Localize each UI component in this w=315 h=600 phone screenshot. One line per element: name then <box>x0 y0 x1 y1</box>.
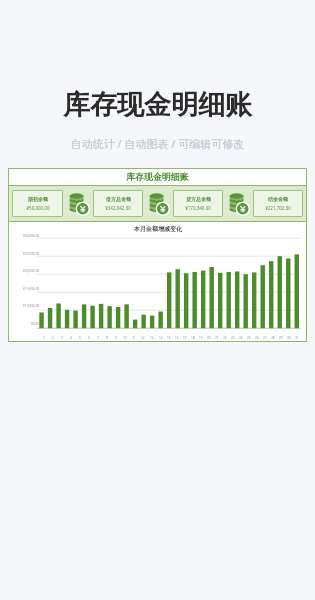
staticText: 9 <box>115 336 117 340</box>
staticText: 14 <box>159 336 163 340</box>
staticText: 28 <box>271 336 275 340</box>
staticText: 23 <box>231 336 235 340</box>
other: Coins <box>66 192 90 216</box>
staticText: 31 <box>295 336 299 340</box>
staticText: 13 <box>150 336 154 340</box>
staticText: 贷方总金额 <box>186 196 211 202</box>
button[interactable]: 期初余额 <box>12 190 63 217</box>
staticText: 27 <box>263 336 267 340</box>
staticText: 2 <box>52 336 54 340</box>
staticText: 22 <box>223 336 227 340</box>
staticText: 29 <box>279 336 283 340</box>
staticText: 18 <box>191 336 195 340</box>
staticText: 15 <box>167 336 171 340</box>
staticText: 20 <box>207 336 211 340</box>
staticText: 25 <box>247 336 251 340</box>
staticText: 自动统计 / 自动图表 / 可编辑可修改 <box>0 136 315 151</box>
staticText: 12 <box>141 336 145 340</box>
staticText: 1 <box>43 336 45 340</box>
staticText: ¥342,042.00 <box>105 205 131 211</box>
staticText: 本月金额增减变化 <box>134 225 182 233</box>
staticText: ¥50,000.00 <box>26 205 50 211</box>
staticText: ¥0.00 <box>31 322 40 326</box>
staticText: ¥221,702.00 <box>265 205 291 211</box>
staticText: 3 <box>61 336 63 340</box>
staticText: 10 <box>123 336 127 340</box>
staticText: 8 <box>106 336 108 340</box>
staticText: 16 <box>175 336 179 340</box>
staticText: ¥170,340.00 <box>185 205 211 211</box>
staticText: 24 <box>239 336 243 340</box>
staticText: ¥15,000.00 <box>23 287 40 291</box>
staticText: 26 <box>255 336 259 340</box>
staticText: 期初余额 <box>28 196 48 202</box>
staticText: 库存现金明细账 <box>0 88 315 122</box>
other: Coins <box>146 192 170 216</box>
button[interactable]: 库存现金明细账 <box>8 168 307 342</box>
staticText: 结余金额 <box>268 196 288 202</box>
staticText: ¥30,000.00 <box>23 234 40 238</box>
staticText: 4 <box>70 336 72 340</box>
staticText: 30 <box>287 336 291 340</box>
button[interactable]: 结余金额 <box>253 190 303 217</box>
staticText: ¥20,000.00 <box>23 269 40 273</box>
staticText: 库存现金明细账 <box>126 171 189 182</box>
button[interactable]: 贷方总金额 <box>173 190 223 217</box>
staticText: 17 <box>183 336 187 340</box>
staticText: 6 <box>88 336 90 340</box>
staticText: 5 <box>79 336 81 340</box>
staticText: 借方总金额 <box>106 196 131 202</box>
staticText: ¥10,000.00 <box>23 304 40 308</box>
staticText: 19 <box>199 336 203 340</box>
staticText: 7 <box>97 336 99 340</box>
other: Coins <box>226 192 250 216</box>
staticText: 21 <box>215 336 219 340</box>
staticText: ¥25,000.00 <box>23 252 40 256</box>
button[interactable]: 借方总金额 <box>93 190 143 217</box>
staticText: 11 <box>132 336 136 340</box>
